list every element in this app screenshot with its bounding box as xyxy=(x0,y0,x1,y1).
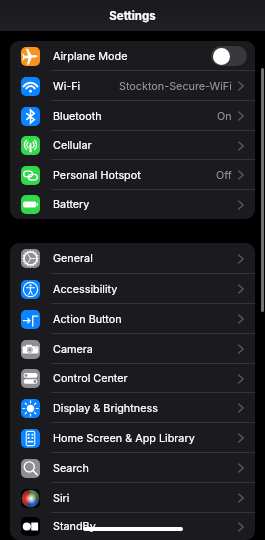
staticText: On xyxy=(217,110,232,123)
button[interactable]: Wi-Fi xyxy=(10,71,255,101)
staticText: Airplane Mode xyxy=(53,50,128,63)
button[interactable]: General xyxy=(10,243,255,274)
staticText: Search xyxy=(53,462,89,475)
button[interactable]: Battery xyxy=(10,190,255,219)
button[interactable]: Airplane Mode toggle xyxy=(211,46,247,66)
button[interactable]: StandBy xyxy=(10,513,255,540)
staticText: Cellular xyxy=(53,139,92,152)
staticText: Camera xyxy=(53,343,93,356)
button[interactable]: Accessibility xyxy=(10,274,255,304)
staticText: Accessibility xyxy=(53,283,118,296)
button[interactable]: Cellular xyxy=(10,131,255,160)
staticText: General xyxy=(53,252,93,265)
button[interactable]: Home Screen & App Library xyxy=(10,423,255,453)
button[interactable]: Personal Hotspot xyxy=(10,160,255,190)
button[interactable]: Action Button xyxy=(10,304,255,334)
staticText: Home Screen & App Library xyxy=(53,432,195,445)
button[interactable]: Control Center xyxy=(10,364,255,393)
staticText: Stockton-Secure-WiFi xyxy=(119,80,232,93)
button[interactable]: Bluetooth xyxy=(10,101,255,131)
button[interactable]: Display & Brightness xyxy=(10,393,255,423)
button[interactable]: Siri xyxy=(10,483,255,513)
staticText: Control Center xyxy=(53,372,128,385)
staticText: StandBy xyxy=(53,520,96,533)
staticText: Off xyxy=(216,169,232,182)
staticText: Settings xyxy=(109,9,156,23)
staticText: Personal Hotspot xyxy=(53,169,141,182)
staticText: Wi-Fi xyxy=(53,80,81,93)
staticText: Bluetooth xyxy=(53,110,102,123)
button[interactable]: Airplane Mode xyxy=(10,41,255,71)
staticText: Action Button xyxy=(53,313,122,326)
button[interactable]: Search xyxy=(10,453,255,483)
staticText: Battery xyxy=(53,198,90,211)
staticText: Display & Brightness xyxy=(53,402,158,415)
button[interactable]: Camera xyxy=(10,334,255,364)
staticText: Siri xyxy=(53,492,70,505)
